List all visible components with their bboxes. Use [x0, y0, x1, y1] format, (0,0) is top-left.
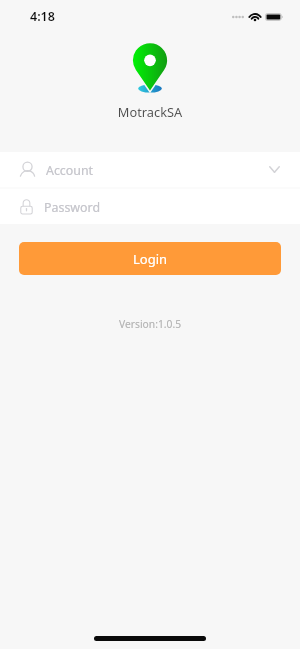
staticText: Account — [46, 162, 94, 179]
staticText: MotrackSA — [0, 103, 300, 120]
staticText: Version:1.0.5 — [0, 317, 300, 331]
button[interactable]: Password — [0, 189, 300, 224]
button[interactable]: Login — [19, 242, 281, 275]
staticText: 4:18 — [30, 8, 55, 25]
staticText: Password — [44, 199, 101, 216]
staticText: Login — [133, 250, 168, 268]
other: Select account — [269, 166, 280, 173]
button[interactable]: Account — [0, 152, 300, 187]
